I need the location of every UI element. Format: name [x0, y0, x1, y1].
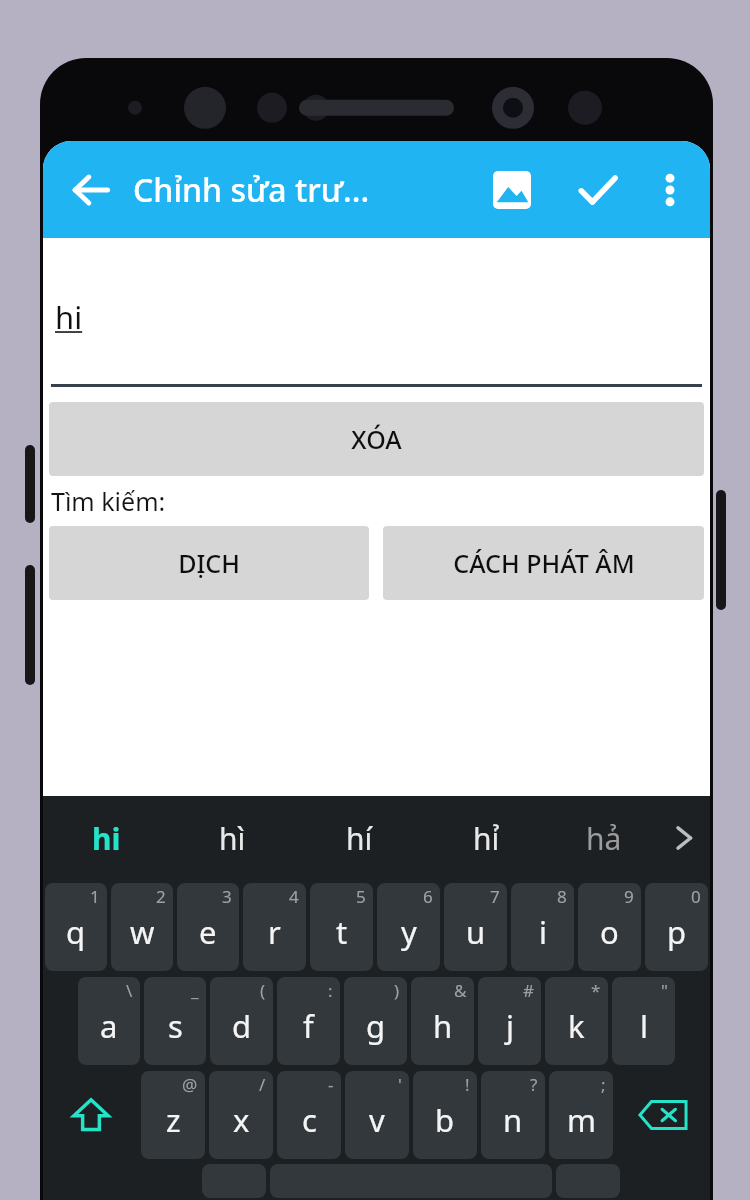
button[interactable]: hì	[169, 796, 296, 880]
button[interactable]: More suggestions	[658, 796, 710, 880]
button[interactable]: Backspace	[617, 1070, 708, 1160]
button[interactable]: Shift	[45, 1070, 137, 1160]
staticText: o	[600, 911, 619, 953]
staticText: )	[394, 979, 400, 1002]
button[interactable]: "	[612, 977, 675, 1065]
staticText: CÁCH PHÁT ÂM	[453, 546, 635, 580]
button[interactable]: 1	[45, 883, 107, 971]
staticText: 8	[557, 885, 567, 908]
button[interactable]: 2	[111, 883, 173, 971]
button[interactable]: 9	[578, 883, 641, 971]
staticText: hi	[55, 296, 83, 338]
staticText: :	[328, 979, 333, 1002]
staticText: '	[398, 1073, 402, 1096]
staticText: y	[401, 911, 417, 953]
button[interactable]: !	[413, 1071, 477, 1159]
staticText: 0	[691, 885, 701, 908]
button[interactable]: Back	[59, 158, 123, 222]
staticText: 4	[289, 885, 299, 908]
button[interactable]: 8	[511, 883, 574, 971]
staticText: t	[336, 911, 348, 953]
staticText: -	[328, 1073, 334, 1096]
button[interactable]: DỊCH	[49, 526, 369, 600]
staticText: /	[259, 1073, 266, 1096]
button[interactable]: 4	[243, 883, 306, 971]
button[interactable]: *	[545, 977, 608, 1065]
staticText: hì	[219, 818, 246, 859]
button[interactable]: /	[209, 1071, 273, 1159]
button[interactable]: -	[277, 1071, 341, 1159]
button[interactable]: hí	[296, 796, 423, 880]
button[interactable]: Comma	[202, 1164, 266, 1198]
staticText: s	[168, 1005, 183, 1047]
staticText: l	[640, 1005, 648, 1047]
staticText: hỉ	[473, 818, 500, 859]
staticText: w	[130, 911, 155, 953]
button[interactable]: XÓA	[49, 402, 704, 476]
staticText: _	[191, 979, 199, 1002]
staticText: x	[233, 1099, 250, 1141]
button[interactable]: #	[478, 977, 541, 1065]
staticText: XÓA	[351, 422, 402, 456]
button[interactable]: hi	[43, 796, 169, 880]
button[interactable]: 0	[645, 883, 708, 971]
button[interactable]: Insert image	[482, 160, 542, 220]
button[interactable]: &	[411, 977, 474, 1065]
staticText: c	[302, 1099, 317, 1141]
staticText: #	[523, 979, 534, 1002]
button[interactable]: CÁCH PHÁT ÂM	[383, 526, 704, 600]
staticText: (	[260, 979, 266, 1002]
staticText: \	[126, 979, 133, 1002]
staticText: 3	[222, 885, 232, 908]
staticText: a	[100, 1005, 118, 1047]
staticText: q	[66, 911, 86, 953]
staticText: hả	[586, 818, 622, 859]
button[interactable]: hả	[550, 796, 658, 880]
button[interactable]: \	[78, 977, 140, 1065]
button[interactable]: Period	[556, 1164, 620, 1198]
staticText: d	[232, 1005, 252, 1047]
button[interactable]: _	[144, 977, 206, 1065]
staticText: u	[466, 911, 486, 953]
button[interactable]: '	[345, 1071, 409, 1159]
button[interactable]: :	[277, 977, 340, 1065]
staticText: 6	[423, 885, 433, 908]
staticText: DỊCH	[178, 546, 240, 580]
button[interactable]: ;	[549, 1071, 613, 1159]
staticText: v	[369, 1099, 385, 1141]
staticText: h	[433, 1005, 453, 1047]
button[interactable]: Save	[568, 160, 628, 220]
staticText: Chỉnh sửa trư...	[133, 168, 370, 212]
staticText: 5	[356, 885, 366, 908]
button[interactable]: hỉ	[423, 796, 550, 880]
button[interactable]: More options	[642, 162, 698, 218]
staticText: r	[268, 911, 281, 953]
staticText: b	[435, 1099, 455, 1141]
staticText: *	[591, 979, 601, 1002]
staticText: i	[539, 911, 547, 953]
staticText: j	[506, 1005, 514, 1047]
staticText: hi	[92, 818, 121, 859]
staticText: ;	[601, 1073, 606, 1096]
button[interactable]: ?	[481, 1071, 545, 1159]
button[interactable]: )	[344, 977, 407, 1065]
button[interactable]: 7	[444, 883, 507, 971]
staticText: 2	[156, 885, 166, 908]
button[interactable]: 6	[377, 883, 440, 971]
staticText: ?	[530, 1073, 538, 1096]
staticText: !	[465, 1073, 470, 1096]
staticText: k	[568, 1005, 585, 1047]
staticText: f	[303, 1005, 314, 1047]
staticText: &	[454, 979, 467, 1002]
button[interactable]: @	[141, 1071, 205, 1159]
staticText: g	[366, 1005, 386, 1047]
staticText: e	[199, 911, 217, 953]
button[interactable]: 3	[177, 883, 239, 971]
staticText: 1	[90, 885, 100, 908]
button[interactable]: (	[210, 977, 273, 1065]
button[interactable]: 5	[310, 883, 373, 971]
